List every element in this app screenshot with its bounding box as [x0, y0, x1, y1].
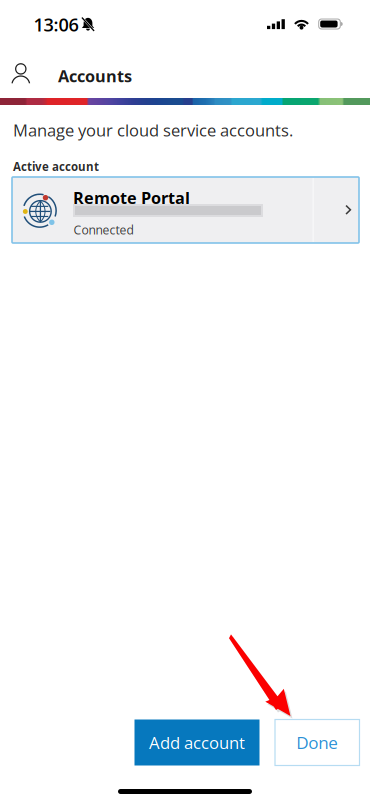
button[interactable]: Add account — [0, 0, 125, 46]
button[interactable]: Remote Portal — [0, 0, 347, 66]
staticText: Accounts — [58, 65, 132, 87]
staticText: Connected — [73, 221, 133, 238]
button[interactable]: Done — [0, 0, 84, 46]
staticText: Remote Portal — [73, 186, 190, 209]
staticText: Manage your cloud service accounts. — [13, 119, 293, 141]
staticText: 13:06 — [33, 12, 78, 37]
staticText: Active account — [13, 159, 99, 174]
staticText: Done — [296, 731, 338, 754]
staticText: Add account — [149, 731, 245, 754]
